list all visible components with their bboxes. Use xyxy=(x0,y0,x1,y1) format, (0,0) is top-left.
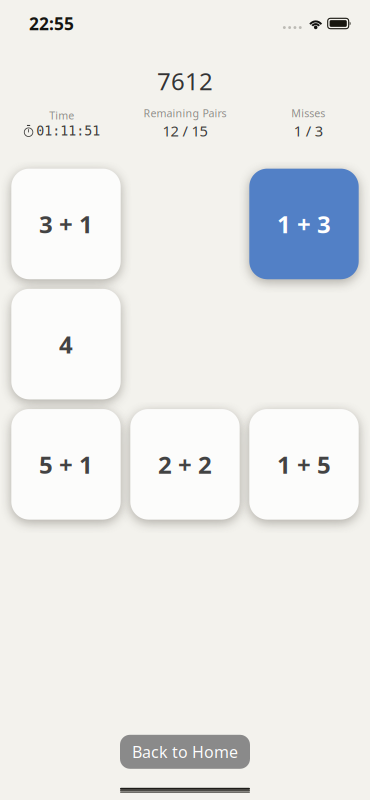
staticText: Time xyxy=(49,108,74,122)
button[interactable]: 3 + 1 xyxy=(11,169,121,279)
staticText: 5 + 1 xyxy=(39,448,93,480)
staticText: 2 + 2 xyxy=(158,448,212,480)
button[interactable]: 1 + 5 xyxy=(249,409,359,520)
staticText: 3 + 1 xyxy=(39,208,93,240)
staticText: 12 / 15 xyxy=(162,121,207,141)
button[interactable]: 1 + 3 xyxy=(249,169,359,279)
staticText: 22:55 xyxy=(29,12,74,35)
button[interactable]: Back to Home xyxy=(120,735,250,769)
button[interactable]: 5 + 1 xyxy=(11,409,121,520)
staticText: Back to Home xyxy=(132,741,238,762)
staticText: Misses xyxy=(291,106,325,120)
staticText: 4 xyxy=(59,328,73,360)
staticText: 1 + 5 xyxy=(277,448,331,480)
staticText: 01:11:51 xyxy=(36,123,100,138)
staticText: Remaining Pairs xyxy=(143,106,226,120)
staticText: 1 + 3 xyxy=(277,208,331,240)
staticText: 1 / 3 xyxy=(294,121,323,141)
staticText: 7612 xyxy=(157,65,213,97)
button[interactable]: 2 + 2 xyxy=(130,409,240,520)
button[interactable]: 4 xyxy=(11,289,121,399)
